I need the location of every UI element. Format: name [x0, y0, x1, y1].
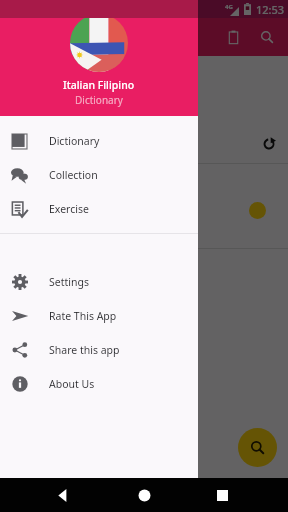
- button[interactable]: Refresh: [255, 130, 282, 157]
- staticText: Exercise: [49, 202, 89, 216]
- staticText: Dictionary: [49, 134, 100, 148]
- button[interactable]: Clipboard: [216, 20, 250, 54]
- button[interactable]: Back: [50, 482, 76, 508]
- staticText: Collection: [49, 168, 98, 182]
- staticText: Rate This App: [49, 309, 117, 323]
- staticText: 12:53: [256, 2, 285, 17]
- button[interactable]: Share this app: [0, 333, 198, 367]
- button[interactable]: Dictionary: [0, 124, 198, 158]
- button[interactable]: About Us: [0, 367, 198, 401]
- button[interactable]: Home: [131, 482, 157, 508]
- button[interactable]: Search: [250, 20, 284, 54]
- button[interactable]: Rate This App: [0, 299, 198, 333]
- button[interactable]: Search: [238, 428, 277, 467]
- staticText: Italian Filipino: [63, 78, 135, 92]
- staticText: Settings: [49, 275, 89, 289]
- button[interactable]: Settings: [0, 265, 198, 299]
- button[interactable]: Recent apps: [209, 482, 235, 508]
- staticText: About Us: [49, 377, 95, 391]
- staticText: 4G: [225, 3, 233, 11]
- button[interactable]: Exercise: [0, 192, 198, 226]
- staticText: Dictionary: [75, 93, 123, 107]
- button[interactable]: Collection: [0, 158, 198, 192]
- staticText: Share this app: [49, 343, 120, 357]
